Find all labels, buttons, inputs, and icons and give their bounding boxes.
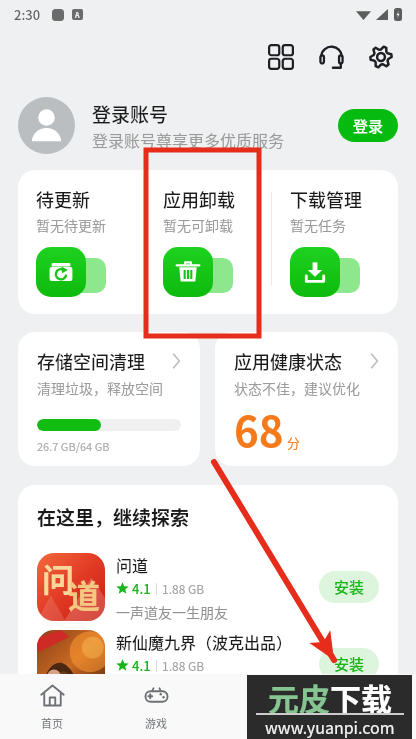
staticText: 清理垃圾，释放空间 — [37, 378, 163, 398]
staticText: 待更新 — [36, 186, 90, 212]
staticText: 新仙魔九界（波克出品） — [116, 630, 293, 653]
staticText: 游戏 — [145, 715, 167, 731]
staticText: 68 — [234, 398, 284, 459]
button[interactable]: Customer support — [310, 36, 352, 78]
button[interactable]: Categories — [260, 36, 302, 78]
staticText: 26.7 GB/64 GB — [37, 438, 110, 454]
button[interactable]: 应用健康状态 — [215, 332, 398, 466]
button[interactable]: 问 — [37, 553, 379, 621]
button[interactable]: 安装 — [319, 648, 379, 680]
staticText: 我的 — [353, 715, 375, 731]
button[interactable]: 安装 — [319, 571, 379, 603]
staticText: www.yuanpi.com — [265, 715, 395, 738]
staticText: 状态不佳，建议优化 — [234, 378, 360, 398]
staticText: 暂无待更新 — [36, 215, 106, 235]
staticText: 登录账号 — [92, 100, 169, 128]
button[interactable]: 待更新 — [18, 170, 144, 314]
button[interactable]: 存储空间清理 — [18, 332, 200, 466]
staticText: 1.88 GB — [162, 580, 205, 597]
button[interactable]: 游戏 — [104, 674, 208, 739]
button[interactable]: 登录 — [338, 109, 398, 142]
staticText: 软件 — [249, 715, 271, 731]
button[interactable]: 下载管理 — [272, 170, 398, 314]
staticText: 应用健康状态 — [234, 348, 342, 374]
staticText: A — [75, 10, 80, 20]
staticText: 一声道友一生朋友 — [116, 602, 228, 621]
button[interactable]: 我的 — [312, 674, 416, 739]
staticText: 问道 — [116, 553, 149, 576]
staticText: 下载管理 — [290, 186, 362, 212]
staticText: 暂无可卸载 — [163, 215, 233, 235]
staticText: 4.1 — [132, 579, 151, 598]
button[interactable]: 新仙魔九界（波克出品） — [37, 630, 379, 698]
staticText: 问 — [42, 555, 75, 601]
button[interactable]: Settings — [360, 36, 402, 78]
staticText: 2:30 — [14, 5, 41, 24]
staticText: 安装 — [334, 653, 365, 675]
staticText: 分 — [287, 433, 301, 452]
staticText: 应用卸载 — [163, 186, 235, 212]
staticText: 安装 — [334, 576, 365, 598]
staticText: 1.88 GB — [162, 657, 205, 674]
staticText: 4.1 — [132, 656, 151, 675]
staticText: 登录 — [353, 115, 384, 137]
button[interactable]: 登录账号 — [18, 96, 398, 154]
staticText: 元皮 — [268, 675, 330, 720]
staticText: 仙魔大战一触即发 — [116, 679, 228, 698]
staticText: 登录账号尊享更多优质服务 — [92, 128, 285, 151]
staticText: 存储空间清理 — [37, 348, 145, 374]
staticText: 道 — [68, 571, 101, 617]
staticText: 下载 — [330, 675, 392, 720]
button[interactable]: 应用卸载 — [145, 170, 271, 314]
staticText: 在这里，继续探索 — [37, 503, 190, 531]
staticText: 首页 — [41, 715, 63, 731]
button[interactable]: 软件 — [208, 674, 312, 739]
button[interactable]: 首页 — [0, 674, 104, 739]
staticText: 暂无任务 — [290, 215, 346, 235]
